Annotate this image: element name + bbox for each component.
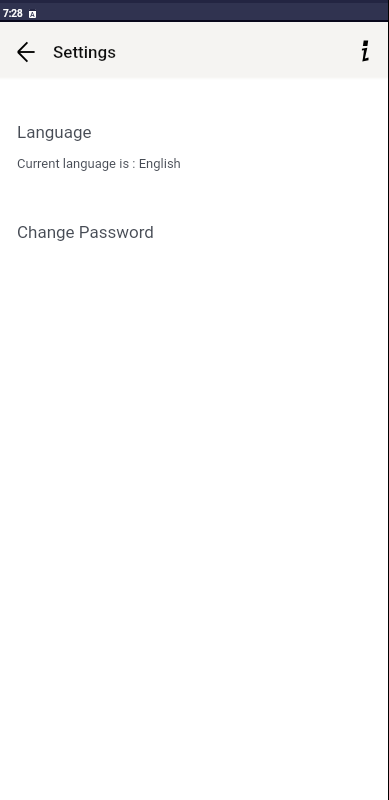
staticText: Change Password [17, 222, 154, 242]
staticText: Current language is : English [17, 156, 181, 171]
button[interactable]: Language [0, 108, 389, 185]
other: Notification [29, 9, 36, 18]
button[interactable]: Change Password [0, 208, 389, 256]
staticText: 7:28 [3, 8, 23, 20]
staticText: Language [17, 122, 92, 142]
staticText: Settings [53, 42, 116, 62]
button[interactable]: Navigate up [4, 22, 47, 80]
button[interactable]: Info [344, 22, 388, 80]
staticText: A [30, 11, 35, 18]
